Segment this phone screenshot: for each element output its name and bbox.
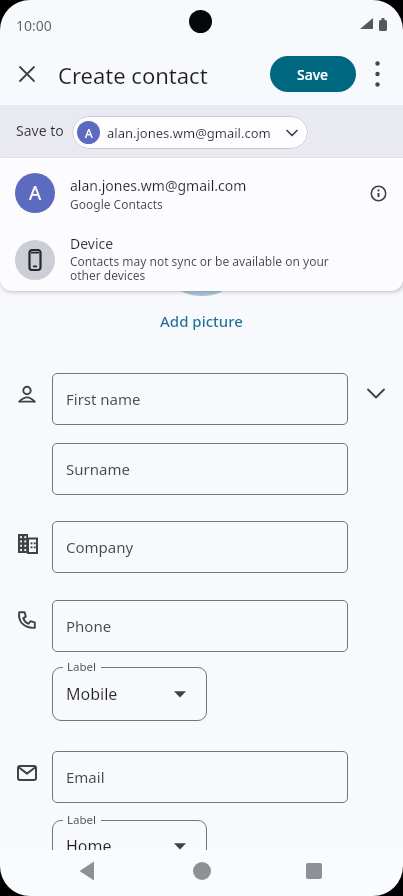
staticText: A (29, 180, 42, 206)
staticText: Label (67, 812, 97, 828)
button[interactable]: A (72, 116, 308, 149)
button[interactable] (78, 861, 97, 881)
staticText: First name (66, 389, 141, 409)
button[interactable]: Add picture (141, 305, 262, 336)
button[interactable] (370, 185, 387, 202)
button[interactable] (369, 57, 386, 91)
staticText: Device (70, 234, 114, 253)
button[interactable] (193, 862, 211, 880)
staticText: Add picture (160, 311, 243, 331)
button[interactable]: First name (52, 373, 348, 425)
button[interactable]: Device (0, 228, 403, 291)
button[interactable]: Surname (52, 443, 348, 495)
staticText: 10:00 (16, 16, 52, 35)
staticText: Save to (16, 121, 64, 140)
button[interactable]: Phone (52, 600, 348, 652)
staticText: A (85, 125, 93, 141)
button[interactable] (367, 387, 385, 401)
staticText: Google Contacts (70, 196, 163, 212)
button[interactable]: Email (52, 751, 348, 803)
button[interactable]: Mobile (52, 667, 207, 721)
staticText: Phone (66, 616, 112, 636)
staticText: alan.jones.wm@gmail.com (70, 176, 247, 195)
button[interactable]: Save (270, 56, 356, 92)
staticText: Save (297, 65, 329, 84)
button[interactable]: Home (52, 820, 207, 872)
staticText: Email (66, 767, 105, 787)
staticText: Label (67, 659, 97, 675)
button[interactable] (19, 66, 35, 82)
staticText: Contacts may not sync or be available on… (70, 253, 329, 284)
staticText: Home (66, 835, 112, 857)
staticText: alan.jones.wm@gmail.com (107, 124, 271, 142)
button[interactable]: Company (52, 521, 348, 573)
staticText: Surname (66, 459, 130, 479)
staticText: Mobile (66, 683, 118, 705)
button[interactable]: A (0, 166, 403, 228)
button[interactable] (306, 863, 322, 879)
staticText: Create contact (58, 60, 208, 90)
staticText: Company (66, 537, 134, 557)
